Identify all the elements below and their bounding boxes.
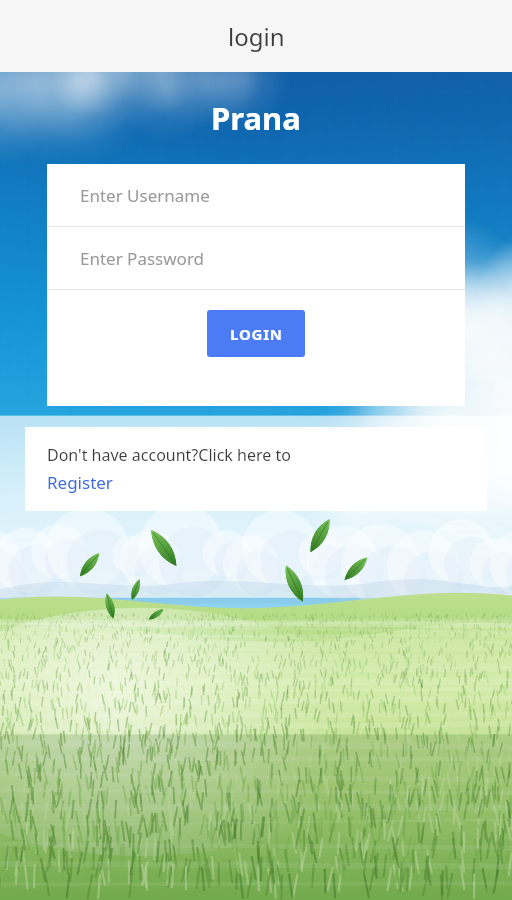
staticText: LOGIN — [230, 324, 283, 344]
staticText: Register — [47, 471, 113, 494]
button[interactable]: Enter Username — [47, 164, 465, 226]
button[interactable]: Don't have account?Click here to — [25, 427, 487, 511]
button[interactable]: Enter Password — [47, 227, 465, 289]
staticText: Don't have account?Click here to — [47, 444, 291, 466]
staticText: Enter Username — [80, 184, 210, 207]
button[interactable]: LOGIN — [207, 310, 305, 357]
staticText: login — [228, 20, 285, 53]
staticText: Prana — [211, 97, 301, 139]
staticText: Enter Password — [80, 247, 205, 270]
